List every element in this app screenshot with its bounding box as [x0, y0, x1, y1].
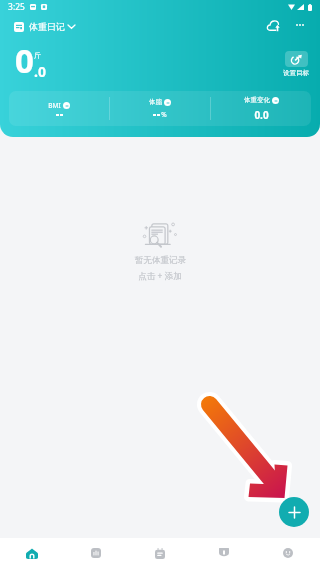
staticText: .0 [34, 62, 46, 81]
button[interactable]: Home [0, 538, 64, 568]
staticText: 0 [15, 38, 34, 83]
button[interactable]: Calendar [128, 538, 192, 568]
button[interactable]: Profile [256, 538, 320, 568]
staticText: 0.0 [254, 108, 269, 122]
staticText: 暂无体重记录 [135, 255, 186, 266]
button[interactable]: Add weight record [279, 497, 309, 527]
staticText: 点击 + 添加 [138, 270, 182, 282]
button[interactable]: Cloud backup [262, 13, 286, 37]
button[interactable]: BMI [9, 91, 109, 126]
staticText: BMI [48, 101, 61, 110]
staticText: 设置目标 [283, 69, 309, 77]
staticText: 体重变化 [244, 96, 270, 104]
button[interactable]: Statistics [64, 538, 128, 568]
staticText: 体重日记 [29, 21, 65, 32]
staticText: 斤 [34, 51, 41, 60]
button[interactable]: 体脂 [110, 91, 210, 126]
button[interactable]: More options [288, 13, 312, 37]
button[interactable]: 体重变化 [211, 91, 311, 126]
button[interactable]: 体重日记 [11, 18, 78, 35]
staticText: 3:25 [8, 1, 25, 13]
button[interactable]: Goals [192, 538, 256, 568]
staticText: % [161, 110, 167, 119]
staticText: 体脂 [149, 98, 162, 106]
button[interactable]: 设置目标 [283, 51, 309, 77]
